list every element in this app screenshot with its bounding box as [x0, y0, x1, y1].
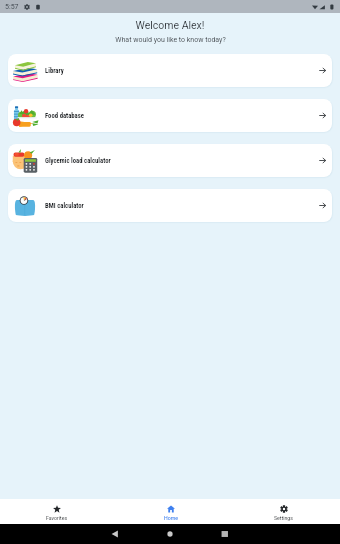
staticText: Glycemic load calculator — [45, 157, 111, 165]
button[interactable]: Home — [114, 499, 227, 524]
staticText: Library — [45, 67, 64, 75]
button[interactable]: Food database — [8, 99, 332, 132]
staticText: Food database — [45, 112, 84, 120]
staticText: Favorites — [46, 515, 68, 521]
staticText: BMI calculator — [45, 202, 84, 210]
staticText: What would you like to know today? — [115, 36, 226, 44]
button[interactable]: Library — [8, 54, 332, 87]
staticText: Settings — [274, 515, 293, 521]
button[interactable]: Back — [106, 525, 124, 543]
button[interactable]: BMI calculator — [8, 189, 332, 222]
button[interactable]: Home — [161, 525, 179, 543]
staticText: Welcome Alex! — [135, 19, 205, 31]
staticText: Home — [164, 515, 178, 521]
button[interactable]: Favorites — [0, 499, 114, 524]
staticText: 5:57 — [5, 3, 19, 11]
button[interactable]: Recent apps — [216, 525, 234, 543]
button[interactable]: Settings — [227, 499, 340, 524]
button[interactable]: Glycemic load calculator — [8, 144, 332, 177]
